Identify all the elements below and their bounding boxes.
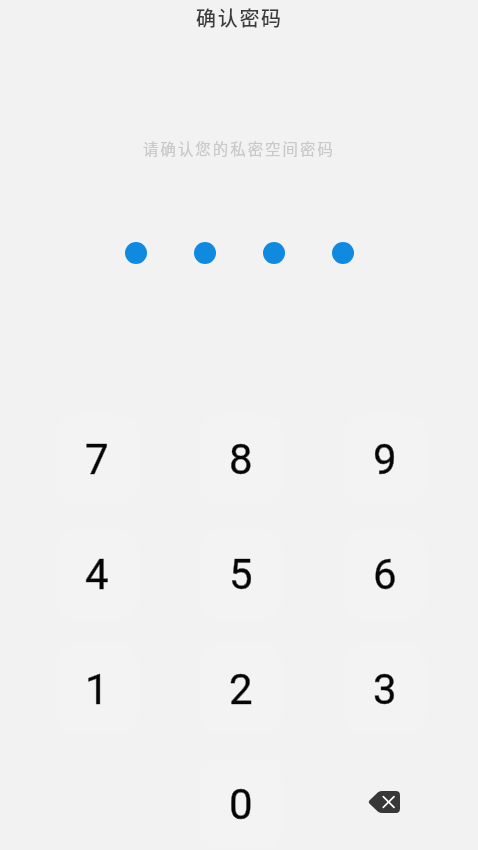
staticText: 确认密码 — [196, 3, 283, 32]
staticText: 4 — [85, 550, 109, 599]
button[interactable]: 3 — [343, 644, 427, 734]
staticText: 9 — [373, 435, 397, 484]
staticText: 5 — [229, 550, 253, 599]
staticText: 2 — [229, 665, 253, 714]
staticText: 4 — [85, 550, 109, 599]
button[interactable]: Backspace, delete last digit — [343, 759, 427, 849]
staticText: 9 — [373, 435, 397, 484]
staticText: 3 — [373, 665, 397, 714]
staticText: 3 — [373, 665, 397, 714]
staticText: 1 — [85, 665, 109, 714]
staticText: 0 — [229, 780, 253, 829]
staticText: 7 — [85, 435, 109, 484]
button[interactable]: 5 — [199, 529, 283, 619]
button[interactable]: 4 — [55, 529, 139, 619]
button[interactable]: 0 — [199, 759, 283, 849]
staticText: 8 — [229, 435, 253, 484]
staticText: 1 — [85, 665, 109, 714]
staticText: 5 — [229, 550, 253, 599]
button[interactable]: 6 — [343, 529, 427, 619]
button[interactable]: 2 — [199, 644, 283, 734]
staticText: 8 — [229, 435, 253, 484]
button[interactable]: 8 — [199, 414, 283, 504]
staticText: 请确认您的私密空间密码 — [143, 137, 335, 159]
button[interactable]: 1 — [55, 644, 139, 734]
staticText: 0 — [229, 780, 253, 829]
staticText: 7 — [85, 435, 109, 484]
staticText: 6 — [373, 550, 397, 599]
staticText: 2 — [229, 665, 253, 714]
staticText: 6 — [373, 550, 397, 599]
button[interactable]: 9 — [343, 414, 427, 504]
button[interactable]: 7 — [55, 414, 139, 504]
